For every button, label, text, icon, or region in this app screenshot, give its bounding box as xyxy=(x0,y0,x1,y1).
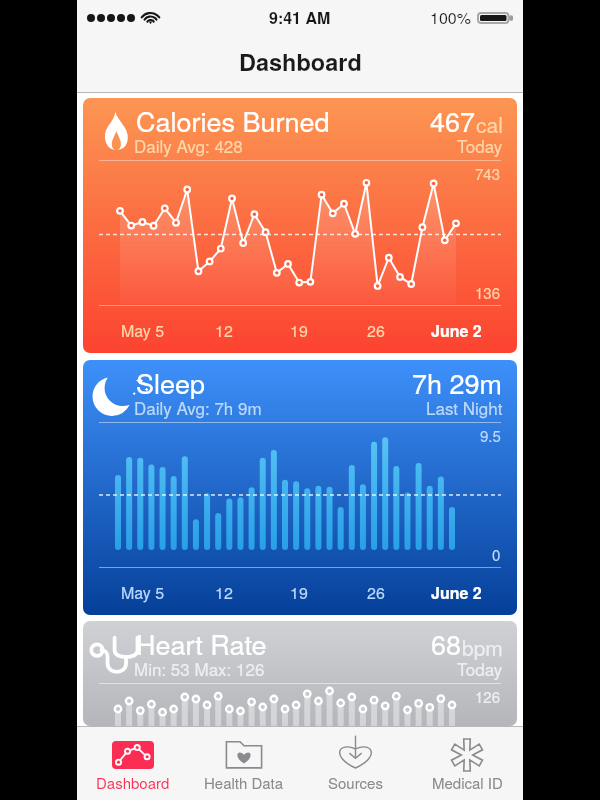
button[interactable]: Dashboard xyxy=(77,727,188,800)
staticText: 19 xyxy=(290,319,308,342)
staticText: June 2 xyxy=(431,581,482,604)
staticText: 68 xyxy=(431,624,462,663)
staticText: 9:41 AM xyxy=(269,6,331,29)
staticText: bpm xyxy=(462,632,503,662)
staticText: 9.5 xyxy=(480,425,501,446)
staticText: 12 xyxy=(215,319,233,342)
button[interactable]: Medical ID xyxy=(411,727,523,800)
staticText: Today xyxy=(457,656,503,680)
button[interactable]: Health Data xyxy=(188,727,299,800)
staticText: Sleep xyxy=(136,363,206,402)
staticText: Dashboard xyxy=(239,45,362,79)
staticText: Min: 53 Max: 126 xyxy=(134,656,265,680)
button[interactable]: Sleep xyxy=(83,360,517,615)
staticText: Daily Avg: 428 xyxy=(134,133,243,157)
staticText: 19 xyxy=(290,581,308,604)
staticText: 7h 29m xyxy=(412,363,503,402)
staticText: 100% xyxy=(430,6,471,29)
staticText: Heart Rate xyxy=(136,624,267,663)
staticText: Dashboard xyxy=(96,772,170,793)
staticText: 136 xyxy=(475,282,501,303)
button[interactable]: Heart Rate xyxy=(83,621,517,726)
staticText: Sources xyxy=(328,772,383,793)
staticText: 0 xyxy=(492,544,501,565)
staticText: Today xyxy=(457,133,503,157)
staticText: June 2 xyxy=(431,319,482,342)
staticText: Health Data xyxy=(204,772,284,793)
staticText: 26 xyxy=(367,581,385,604)
other: Dashboard xyxy=(112,741,154,769)
button[interactable]: Calories Burned xyxy=(83,98,517,353)
staticText: May 5 xyxy=(121,319,165,342)
button[interactable]: Sources xyxy=(299,727,411,800)
staticText: Medical ID xyxy=(432,772,503,793)
staticText: Last Night xyxy=(426,395,503,419)
staticText: Daily Avg: 7h 9m xyxy=(134,395,262,419)
staticText: Calories Burned xyxy=(136,101,330,140)
staticText: 743 xyxy=(475,163,501,184)
other: Medical ID xyxy=(448,739,486,771)
staticText: 467 xyxy=(430,101,476,140)
staticText: 12 xyxy=(215,581,233,604)
staticText: 126 xyxy=(475,686,501,707)
staticText: May 5 xyxy=(121,581,165,604)
other: Sources xyxy=(337,741,374,768)
staticText: cal xyxy=(476,109,503,139)
other: Health Data xyxy=(224,740,264,769)
staticText: 26 xyxy=(367,319,385,342)
